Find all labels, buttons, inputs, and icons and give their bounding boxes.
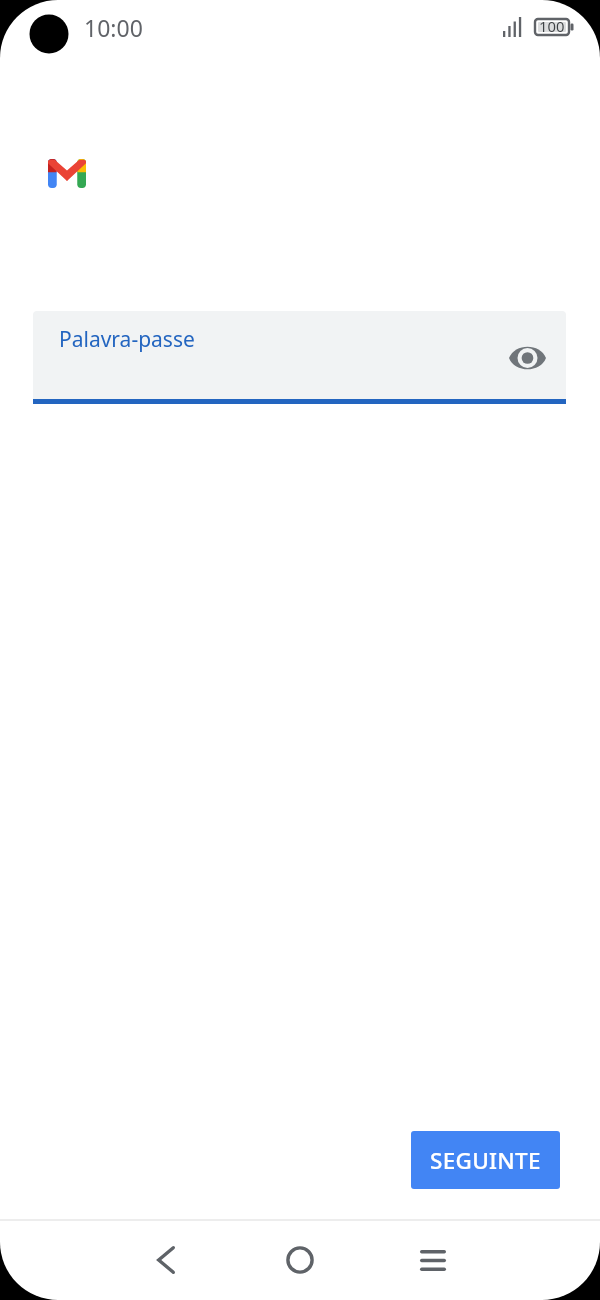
staticText: Palavra-passe (59, 325, 195, 354)
button[interactable]: Home (260, 1220, 340, 1300)
button[interactable]: SEGUINTE (411, 1131, 560, 1189)
button[interactable]: Recent apps (393, 1220, 473, 1300)
button[interactable]: Back (126, 1220, 206, 1300)
staticText: SEGUINTE (430, 1145, 541, 1176)
staticText: 100 (539, 16, 565, 34)
button[interactable]: Show password (503, 334, 551, 382)
staticText: 10:00 (84, 12, 143, 43)
button[interactable]: Palavra-passe (33, 311, 566, 404)
